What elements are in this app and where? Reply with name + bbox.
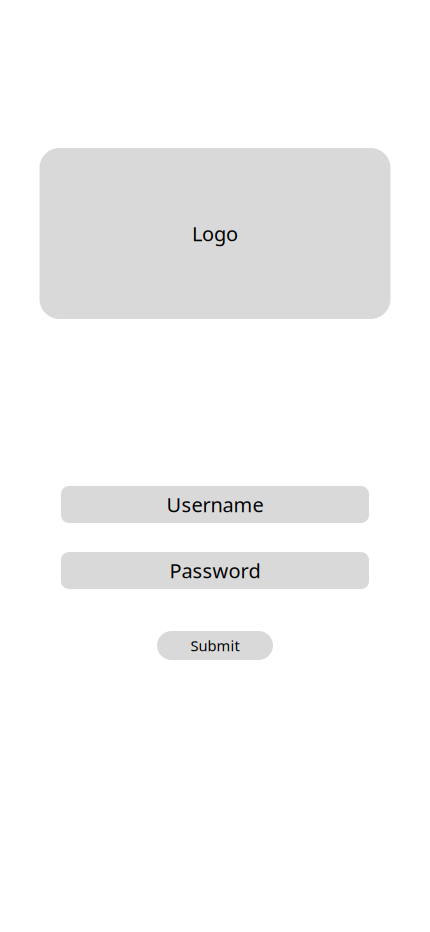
- button[interactable]: Username: [61, 486, 369, 523]
- staticText: Logo: [192, 220, 238, 247]
- button[interactable]: Submit: [157, 631, 273, 660]
- button[interactable]: Password: [61, 552, 369, 589]
- staticText: Username: [166, 491, 263, 518]
- staticText: Submit: [190, 636, 239, 655]
- staticText: Password: [169, 557, 260, 584]
